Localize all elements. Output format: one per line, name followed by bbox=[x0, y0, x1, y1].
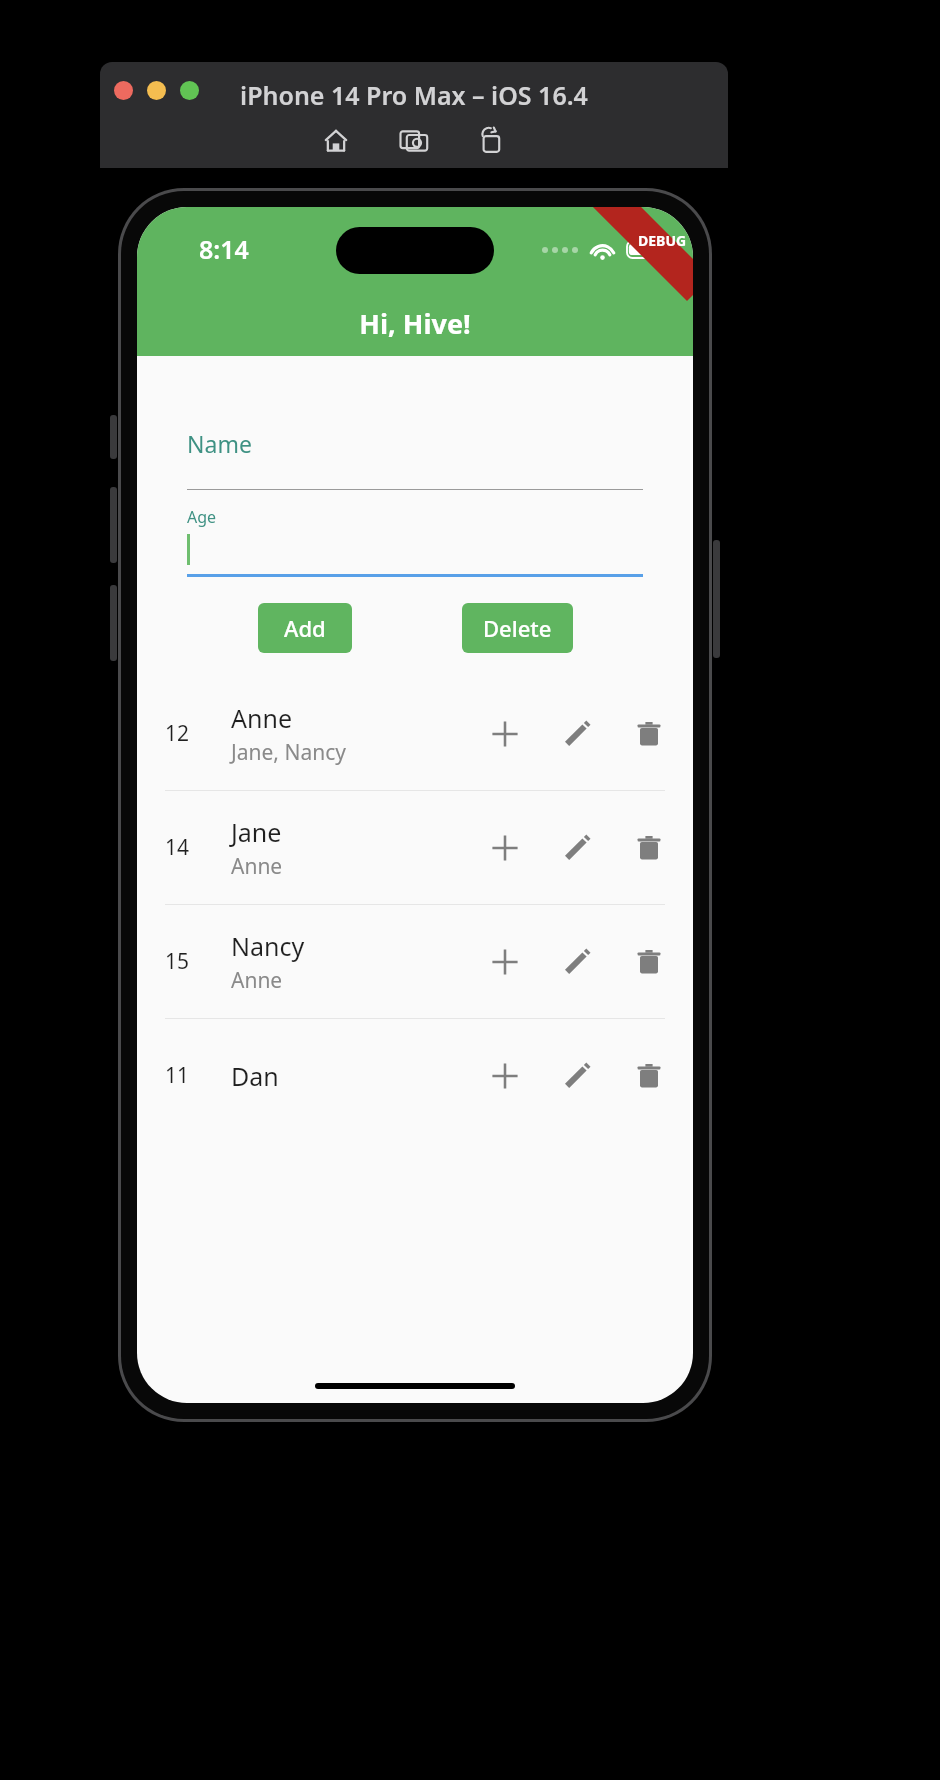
button[interactable]: Delete bbox=[627, 826, 671, 870]
staticText: Anne bbox=[231, 701, 292, 735]
button[interactable]: Home bbox=[317, 122, 355, 160]
staticText: 12 bbox=[165, 719, 190, 748]
staticText: 15 bbox=[165, 947, 190, 976]
staticText: Jane bbox=[231, 815, 282, 849]
button[interactable]: Edit bbox=[555, 826, 599, 870]
staticText: iPhone 14 Pro Max – iOS 16.4 bbox=[100, 78, 728, 112]
staticText: Delete bbox=[483, 613, 552, 643]
button[interactable]: Add relation bbox=[483, 826, 527, 870]
staticText: Hi, Hive! bbox=[137, 305, 693, 342]
button[interactable]: Close bbox=[114, 81, 133, 100]
staticText: 11 bbox=[165, 1061, 190, 1090]
staticText: Dan bbox=[231, 1059, 279, 1093]
button[interactable]: 12 bbox=[137, 677, 693, 790]
button[interactable]: Add relation bbox=[483, 712, 527, 756]
staticText: DEBUG bbox=[638, 231, 687, 250]
staticText: 14 bbox=[165, 833, 190, 862]
button[interactable]: Screenshot bbox=[395, 122, 433, 160]
button[interactable]: Add relation bbox=[483, 940, 527, 984]
staticText: Jane, Nancy bbox=[231, 738, 346, 767]
button[interactable]: 11 bbox=[137, 1019, 693, 1132]
button[interactable]: 15 bbox=[137, 905, 693, 1018]
button[interactable]: Delete bbox=[627, 940, 671, 984]
staticText: Age bbox=[187, 506, 217, 528]
staticText: Add bbox=[284, 613, 326, 643]
button[interactable]: Maximize bbox=[180, 81, 199, 100]
staticText: Anne bbox=[231, 852, 283, 881]
staticText: Nancy bbox=[231, 929, 305, 963]
button[interactable]: Delete bbox=[627, 712, 671, 756]
button[interactable]: Edit bbox=[555, 712, 599, 756]
staticText: 8:14 bbox=[199, 232, 249, 266]
button[interactable]: Add bbox=[258, 603, 352, 653]
button[interactable]: Edit bbox=[555, 940, 599, 984]
button[interactable]: Edit bbox=[555, 1054, 599, 1098]
button[interactable]: Rotate bbox=[473, 122, 511, 160]
staticText: Name bbox=[187, 428, 252, 459]
button[interactable]: Delete bbox=[627, 1054, 671, 1098]
button[interactable]: 14 bbox=[137, 791, 693, 904]
button[interactable]: Minimize bbox=[147, 81, 166, 100]
button[interactable]: Add relation bbox=[483, 1054, 527, 1098]
staticText: Anne bbox=[231, 966, 283, 995]
button[interactable]: Delete bbox=[462, 603, 573, 653]
